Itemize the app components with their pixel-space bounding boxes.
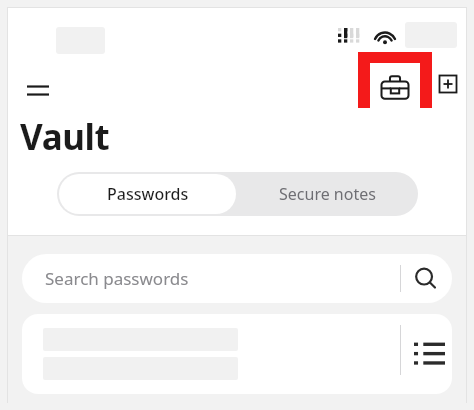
staticText: Search passwords	[45, 267, 189, 290]
button[interactable]: Secure notes	[238, 174, 416, 214]
other: Search	[414, 267, 438, 291]
button[interactable]: Add	[432, 68, 464, 100]
other: Sort list	[414, 340, 445, 368]
button[interactable]: Work profile vault	[370, 63, 420, 111]
staticText: Secure notes	[279, 183, 376, 205]
button[interactable]: Sort list	[22, 314, 452, 394]
staticText: Passwords	[107, 183, 189, 205]
button[interactable]: Menu	[18, 71, 58, 111]
button[interactable]: Passwords	[59, 174, 236, 214]
staticText: Vault	[20, 113, 110, 161]
button[interactable]: Search passwords	[22, 254, 452, 303]
